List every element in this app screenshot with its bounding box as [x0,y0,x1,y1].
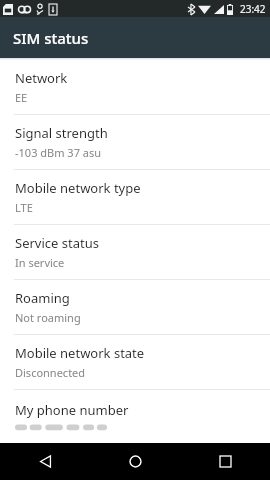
button[interactable]: Mobile network type [0,170,270,224]
staticText: In service [15,255,65,270]
staticText: EE [15,90,28,105]
staticText: Roaming [15,289,70,307]
button[interactable]: Back [0,443,90,480]
staticText: My phone number [15,401,129,419]
button[interactable]: Network [0,60,270,114]
button[interactable]: My phone number [0,390,270,443]
staticText: Not roaming [15,310,81,325]
button[interactable]: Signal strength [0,115,270,169]
staticText: Service status [15,234,99,252]
button[interactable]: Home [90,443,180,480]
staticText: Mobile network type [15,179,141,197]
staticText: Mobile network state [15,344,145,362]
staticText: 23:42 [240,2,266,16]
button[interactable]: Recent apps [180,443,270,480]
staticText: LTE [15,200,33,215]
staticText: Network [15,69,68,87]
button[interactable]: Roaming [0,280,270,334]
staticText: -103 dBm 37 asu [15,145,102,160]
button[interactable]: Mobile network state [0,335,270,389]
staticText: Disconnected [15,365,86,380]
button[interactable]: Service status [0,225,270,279]
staticText: Signal strength [15,124,108,142]
staticText: SIM status [13,28,89,48]
